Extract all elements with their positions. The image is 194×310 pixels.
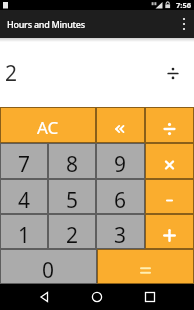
button[interactable] [145, 107, 194, 143]
staticText: 2 [5, 59, 18, 88]
staticText: 2 [66, 221, 79, 249]
staticText: 4 [18, 186, 31, 214]
button[interactable]: 3 [96, 214, 145, 249]
button[interactable]: 8 [48, 143, 96, 179]
button[interactable] [145, 179, 194, 214]
staticText: 3 [114, 221, 127, 249]
button[interactable]: 9 [96, 143, 145, 179]
button[interactable] [174, 14, 194, 34]
button[interactable] [145, 143, 194, 179]
staticText: 8 [66, 150, 79, 179]
button[interactable] [64, 284, 129, 310]
button[interactable] [96, 107, 145, 143]
staticText: AC [37, 116, 59, 139]
button[interactable]: 0 [0, 249, 97, 284]
staticText: 9 [114, 150, 127, 179]
button[interactable]: 1 [0, 214, 48, 249]
button[interactable]: 6 [96, 179, 145, 214]
staticText: 6 [114, 186, 127, 214]
button[interactable] [97, 249, 194, 284]
button[interactable] [0, 284, 64, 310]
staticText: 7:56 [176, 0, 191, 10]
button[interactable] [129, 284, 194, 310]
staticText: 5 [66, 186, 79, 214]
button[interactable]: 7 [0, 143, 48, 179]
button[interactable]: 5 [48, 179, 96, 214]
button[interactable]: AC [0, 107, 96, 143]
staticText: 7 [18, 150, 31, 179]
staticText: 0 [42, 256, 55, 284]
button[interactable]: 2 [48, 214, 96, 249]
staticText: Hours and Minutes [7, 18, 85, 30]
button[interactable] [145, 214, 194, 249]
button[interactable]: 4 [0, 179, 48, 214]
staticText: 1 [18, 221, 31, 249]
